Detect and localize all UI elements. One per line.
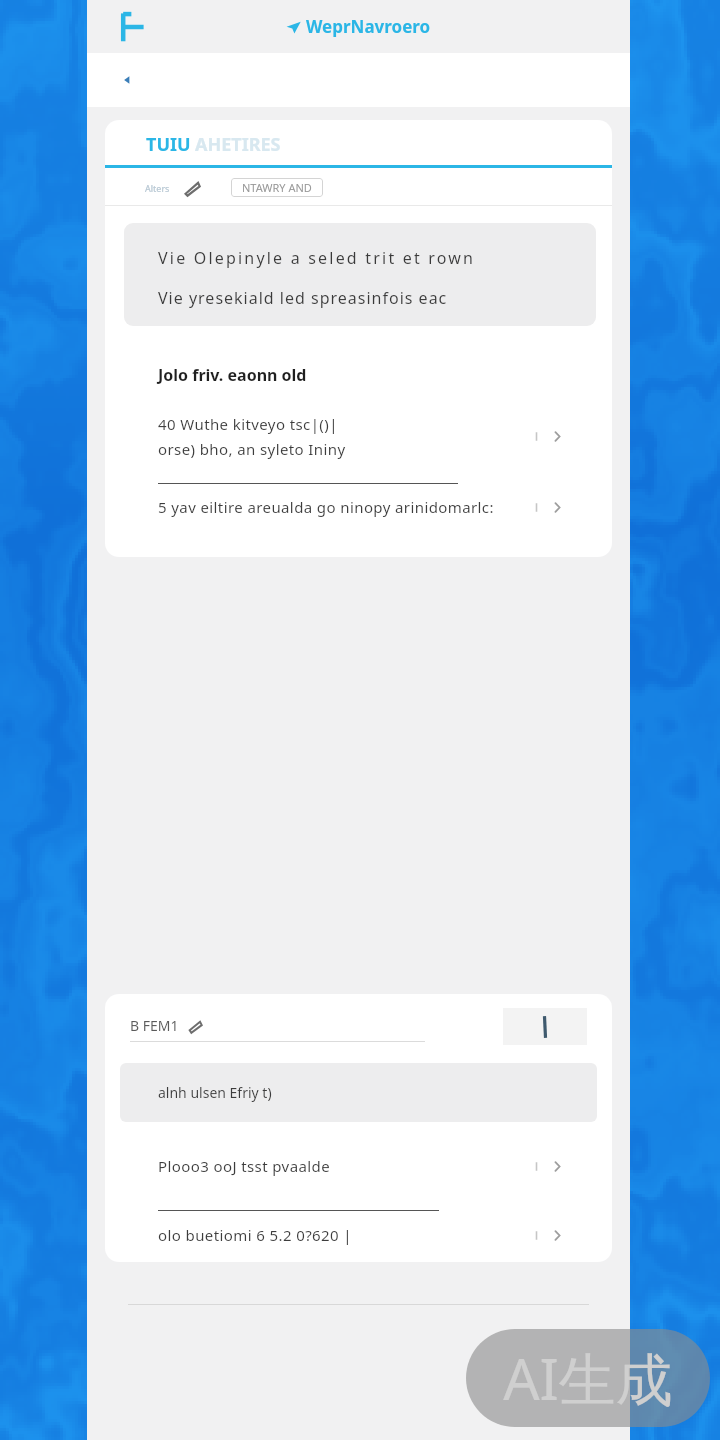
button[interactable]: olo buetiomi 6 5.2 0?620 | [105,1225,612,1245]
staticText: Jolo friv. eaonn old [158,364,307,386]
button[interactable]: 40 Wuthe kitveyo tsc|()| [105,414,612,484]
button[interactable]: Menu [113,10,147,44]
staticText: Vie yresekiald led spreasinfois eac [158,287,448,309]
staticText: Vie Olepinyle a seled trit et rown [158,247,476,269]
button[interactable]: TUIU [146,132,281,157]
staticText: WeprNavroero [306,15,431,38]
staticText: Plooo3 ooJ tsst pvaalde [158,1156,331,1176]
staticText: olo buetiomi 6 5.2 0?620 | [158,1225,352,1245]
staticText: B FEM1 [130,1016,179,1035]
other: Edit field [188,1019,202,1033]
button[interactable]: NTAWRY AND [231,178,323,197]
staticText: TUIU [146,132,191,157]
staticText: 5 yav eiltire areualda go ninopy arinido… [158,497,494,517]
staticText: Alters [145,182,170,194]
staticText: alnh ulsen Efriy t) [158,1083,272,1102]
staticText: AI生成 [503,1339,673,1417]
button[interactable]: Back [115,68,139,92]
other: Filter [184,180,200,196]
button[interactable]: WeprNavroero [286,15,431,38]
staticText: orse) bho, an syleto Ininy [158,439,346,459]
other: Edit [532,1014,558,1040]
button[interactable]: Edit [503,1008,587,1045]
staticText: AHETIRES [195,132,281,157]
button[interactable]: 5 yav eiltire areualda go ninopy arinido… [105,497,612,517]
button[interactable]: Plooo3 ooJ tsst pvaalde [105,1156,612,1211]
staticText: 40 Wuthe kitveyo tsc|()| [158,414,338,434]
staticText: NTAWRY AND [242,180,312,195]
